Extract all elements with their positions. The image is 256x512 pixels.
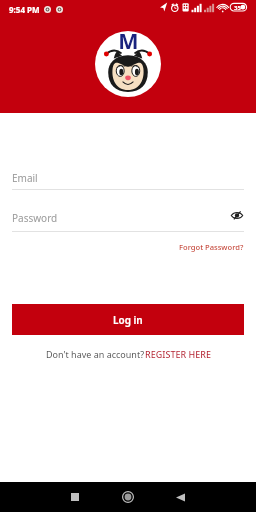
staticText: Email bbox=[12, 171, 244, 185]
button[interactable]: Log in bbox=[12, 304, 244, 335]
staticText: Forgot Password? bbox=[179, 242, 244, 252]
button[interactable]: REGISTER HERE bbox=[145, 348, 211, 360]
button[interactable]: Home bbox=[120, 489, 136, 505]
button[interactable]: Forgot Password? bbox=[177, 240, 246, 254]
button[interactable]: Back bbox=[173, 490, 187, 504]
staticText: 35 bbox=[234, 4, 241, 12]
staticText: M bbox=[118, 26, 139, 55]
button[interactable]: Toggle password visibility bbox=[228, 206, 246, 224]
staticText: 9:54 PM bbox=[9, 4, 40, 15]
button[interactable]: Recents bbox=[68, 490, 82, 504]
staticText: REGISTER HERE bbox=[145, 348, 211, 360]
staticText: Don't have an account? bbox=[46, 348, 145, 360]
staticText: Password bbox=[12, 211, 226, 225]
staticText: Log in bbox=[113, 313, 143, 327]
